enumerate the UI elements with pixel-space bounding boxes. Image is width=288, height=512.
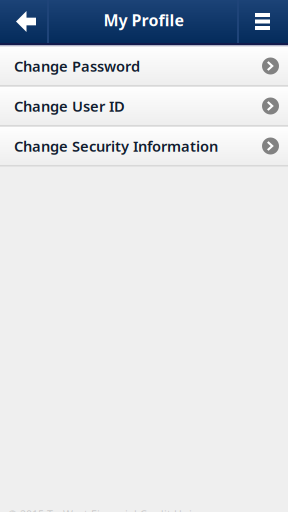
button[interactable]: Change Security Information <box>0 127 288 167</box>
staticText: Change Security Information <box>14 136 218 156</box>
button[interactable]: Back <box>0 0 49 43</box>
button[interactable]: Change Password <box>0 47 288 87</box>
staticText: Change Password <box>14 56 140 76</box>
staticText: © 2015 TruWest Financial Credit Union <box>8 507 205 512</box>
button[interactable]: Menu <box>237 0 288 43</box>
button[interactable]: Change User ID <box>0 87 288 127</box>
staticText: My Profile <box>103 9 184 31</box>
staticText: Change User ID <box>14 96 125 116</box>
